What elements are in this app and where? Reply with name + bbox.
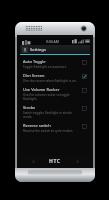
button[interactable]: Reverse switch [23, 121, 87, 135]
button[interactable]: Use Volume Rocker [23, 85, 87, 103]
button[interactable]: Enabled [82, 74, 87, 79]
button[interactable]: Auto Toggle [23, 57, 87, 71]
button[interactable]: Settings [20, 45, 90, 54]
button[interactable]: Back [29, 157, 38, 166]
staticText: 9:04 AM [46, 39, 59, 44]
button[interactable]: Disabled [82, 60, 87, 65]
staticText: Switch toggles flashlight in strobe mode… [23, 111, 80, 119]
button[interactable]: Disabled [82, 124, 87, 129]
staticText: Dim Screen [23, 73, 45, 78]
staticText: Reverse the switch to cycle modes. [23, 129, 74, 133]
staticText: Strobe [23, 105, 36, 110]
staticText: Dim the screen when flashlight is on. [23, 79, 77, 83]
button[interactable]: Dim Screen [23, 71, 87, 85]
staticText: Use the volume rocker to toggle flashlig… [23, 93, 80, 101]
staticText: Settings [30, 47, 46, 53]
button[interactable]: Home [73, 157, 82, 166]
button[interactable]: Disabled [82, 106, 87, 111]
button[interactable]: Strobe [23, 103, 87, 121]
staticText: HTC [49, 158, 61, 165]
button[interactable]: Disabled [82, 88, 87, 93]
staticText: Toggle flashlight on autostart. [23, 65, 67, 69]
staticText: Use Volume Rocker [23, 87, 60, 92]
staticText: Reverse switch [23, 123, 51, 128]
staticText: Auto Toggle [23, 59, 46, 64]
